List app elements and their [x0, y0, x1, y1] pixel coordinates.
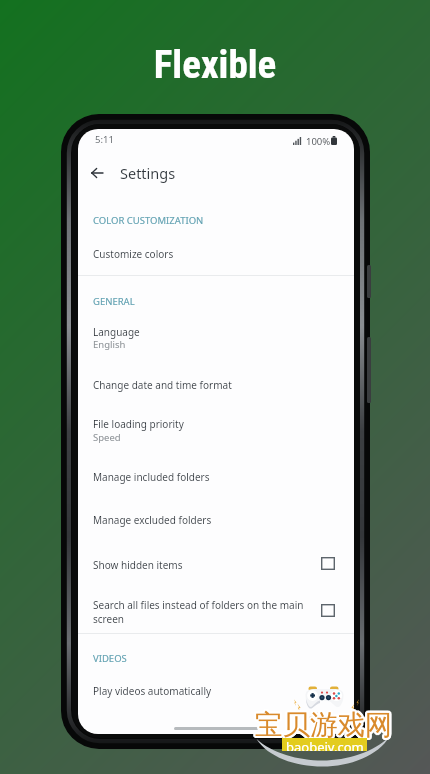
staticText: 宝贝游戏网 [254, 707, 392, 742]
button[interactable]: Toggle [311, 551, 345, 585]
staticText: Manage included folders [93, 470, 210, 484]
staticText: 宝贝游戏网 [253, 709, 391, 744]
staticText: 宝贝游戏网 [257, 709, 395, 744]
staticText: 宝贝游戏网 [254, 710, 392, 745]
staticText: Show hidden items [93, 558, 183, 572]
staticText: 宝贝游戏网 [257, 708, 395, 743]
staticText: Settings [120, 163, 176, 183]
button[interactable] [78, 368, 354, 406]
staticText: GENERAL [93, 295, 135, 308]
staticText: 宝贝游戏网 [254, 708, 392, 743]
button[interactable] [78, 674, 354, 712]
staticText: COLOR CUSTOMIZATION [93, 214, 204, 227]
staticText: 宝贝游戏网 [255, 710, 393, 745]
staticText: VIDEOS [93, 652, 127, 665]
staticText: Speed [93, 431, 121, 444]
staticText: 宝贝游戏网 [256, 710, 394, 745]
button[interactable] [78, 503, 354, 541]
button[interactable] [78, 588, 354, 632]
staticText: 宝贝游戏网 [256, 709, 394, 744]
staticText: 宝贝游戏网 [254, 706, 392, 741]
staticText: 宝贝游戏网 [256, 707, 394, 742]
staticText: Search all files instead of folders on t… [93, 598, 304, 612]
staticText: Manage excluded folders [93, 513, 212, 527]
staticText: 宝贝游戏网 [256, 706, 394, 741]
staticText: baobeiy.com [286, 738, 364, 751]
button[interactable] [78, 546, 354, 584]
button[interactable] [78, 461, 354, 499]
button[interactable] [78, 318, 354, 354]
staticText: Customize colors [93, 247, 174, 261]
staticText: Language [93, 325, 140, 339]
staticText: 宝贝游戏网 [255, 706, 393, 741]
staticText: 宝贝游戏网 [257, 707, 395, 742]
button[interactable] [78, 410, 354, 446]
staticText: 宝贝游戏网 [255, 709, 393, 744]
staticText: Flexible [0, 42, 430, 88]
staticText: Play videos automatically [93, 684, 212, 698]
staticText: 100% [306, 135, 331, 148]
staticText: 宝贝游戏网 [255, 708, 393, 743]
staticText: 宝贝游戏网 [256, 708, 394, 743]
staticText: 宝贝游戏网 [255, 707, 393, 742]
staticText: 宝贝游戏网 [254, 709, 392, 744]
button[interactable] [78, 238, 354, 278]
button[interactable]: Toggle [311, 598, 345, 632]
button[interactable]: Back [80, 155, 114, 191]
staticText: Change date and time format [93, 378, 232, 392]
staticText: English [93, 338, 126, 351]
staticText: 5:11 [95, 133, 114, 146]
staticText: 宝贝游戏网 [253, 708, 391, 743]
staticText: 宝贝游戏网 [253, 707, 391, 742]
staticText: screen [93, 612, 124, 626]
staticText: File loading priority [93, 417, 184, 431]
